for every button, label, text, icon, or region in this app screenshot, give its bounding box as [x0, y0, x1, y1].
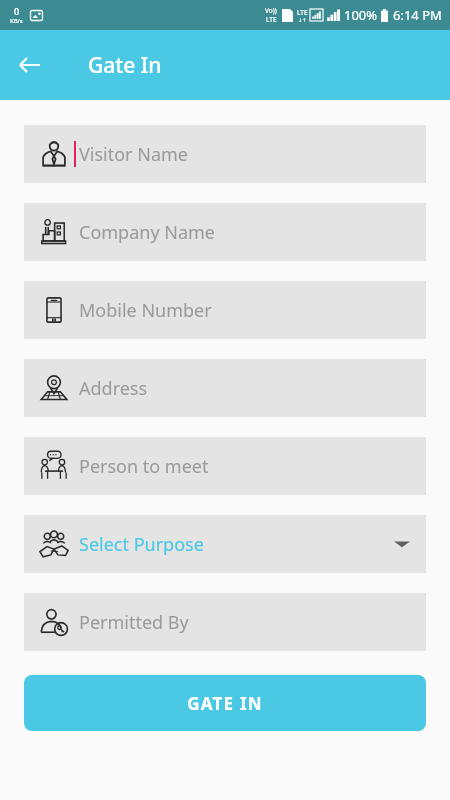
button[interactable]: Visitor Name: [24, 125, 426, 183]
staticText: Vo)): [265, 6, 277, 15]
button[interactable]: Mobile Number: [24, 281, 426, 339]
staticText: Person to meet: [79, 454, 209, 479]
button[interactable]: Select Purpose: [24, 515, 426, 573]
button[interactable]: Person to meet: [24, 437, 426, 495]
button[interactable]: Company Name: [24, 203, 426, 261]
staticText: Permitted By: [79, 610, 189, 635]
staticText: 6:14 PM: [393, 6, 442, 24]
staticText: GATE IN: [187, 692, 263, 715]
staticText: Mobile Number: [79, 298, 212, 323]
button[interactable]: GATE IN: [24, 675, 426, 731]
staticText: 100%: [344, 6, 378, 24]
staticText: KB/s: [10, 17, 23, 25]
button[interactable]: Back: [8, 43, 52, 87]
staticText: ↓↑: [298, 17, 307, 23]
button[interactable]: Address: [24, 359, 426, 417]
staticText: 0: [14, 5, 20, 17]
staticText: Visitor Name: [79, 142, 188, 167]
staticText: Gate In: [88, 51, 162, 80]
button[interactable]: Permitted By: [24, 593, 426, 651]
staticText: Company Name: [79, 220, 216, 245]
staticText: Address: [79, 376, 148, 401]
staticText: LTE: [266, 15, 277, 24]
staticText: LTE: [297, 8, 308, 17]
staticText: Select Purpose: [79, 532, 204, 557]
